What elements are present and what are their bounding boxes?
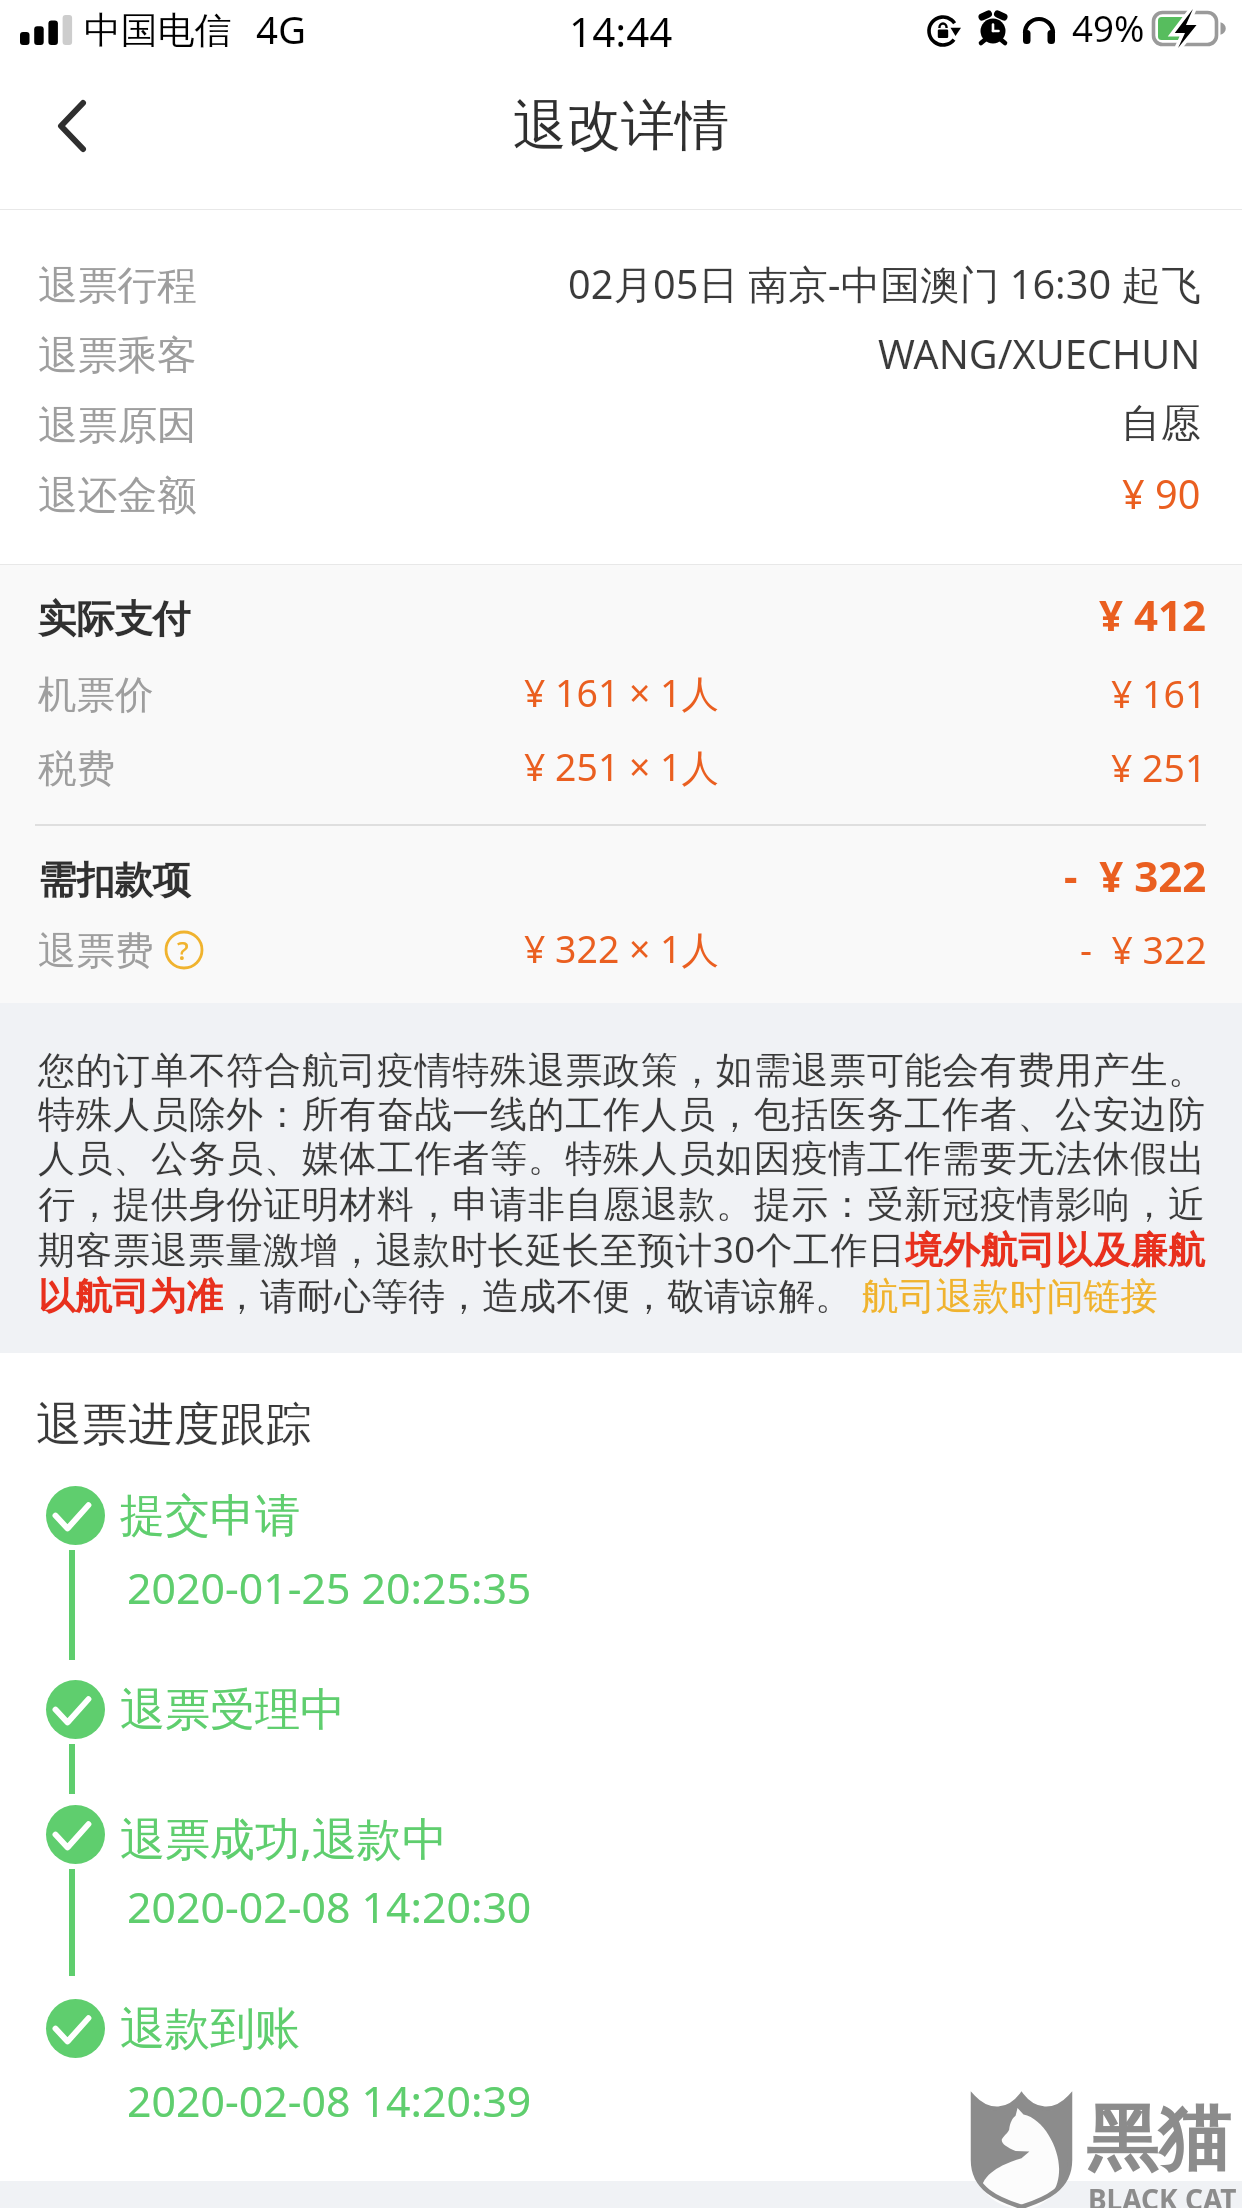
staticText: 中国电信 (84, 8, 232, 54)
staticText: - ¥ 322 (1064, 847, 1207, 899)
staticText: ¥ 90 (1122, 467, 1201, 521)
button[interactable]: 机票价 (0, 665, 1242, 717)
button[interactable]: 退还金额 (0, 461, 1242, 531)
staticText: 02月05日 南京-中国澳门 16:30 起飞 (568, 257, 1201, 311)
staticText: 退票成功,退款中 (120, 1807, 448, 1868)
button[interactable]: 退票费 (0, 921, 1242, 973)
staticText: ? (177, 932, 189, 967)
button[interactable]: Help (166, 931, 204, 969)
staticText: ¥ 161 × 1人 (524, 667, 719, 718)
button[interactable]: 退票原因 (0, 391, 1242, 461)
staticText: ¥ 412 (1099, 586, 1207, 638)
button[interactable]: 提交申请 (46, 1486, 105, 1545)
staticText: BLACK CAT (1088, 2180, 1237, 2208)
staticText: 退还金额 (38, 471, 197, 521)
staticText: 需扣款项 (38, 856, 191, 904)
staticText: 退票费 (38, 927, 154, 976)
staticText: 税费 (38, 745, 115, 794)
staticText: 49% (1072, 3, 1145, 53)
button[interactable]: 退票受理中 (46, 1680, 105, 1739)
button[interactable]: 税费 (0, 739, 1242, 791)
staticText: 机票价 (38, 671, 154, 720)
staticText: 自愿 (1121, 399, 1201, 449)
staticText: 退改详情 (513, 92, 729, 160)
button[interactable]: Back (30, 84, 114, 168)
staticText: 提交申请 (120, 1488, 300, 1545)
staticText: 退票行程 (38, 261, 197, 311)
staticText: 14:44 (569, 4, 673, 59)
staticText: 退票乘客 (38, 331, 197, 381)
staticText: 退票受理中 (120, 1682, 345, 1739)
staticText: - ¥ 322 (1080, 924, 1207, 975)
staticText: 退票进度跟踪 (36, 1396, 312, 1454)
staticText: WANG/XUECHUN (878, 327, 1201, 381)
button[interactable]: 需扣款项 (0, 848, 1242, 900)
staticText: ¥ 251 (1111, 742, 1207, 793)
staticText: 2020-02-08 14:20:39 (127, 2071, 532, 2129)
staticText: 退款到账 (120, 2001, 300, 2058)
button[interactable]: 退票行程 (0, 251, 1242, 321)
staticText: 实际支付 (38, 595, 191, 643)
staticText: 4G (256, 3, 307, 55)
button[interactable]: 退票乘客 (0, 321, 1242, 391)
staticText: ¥ 322 × 1人 (524, 923, 719, 974)
button[interactable]: 实际支付 (0, 587, 1242, 639)
staticText: 您的订单不符合航司疫情特殊退票政策，如需退票可能会有费用产生。特殊人员除外：所有… (38, 1047, 1205, 1320)
button[interactable]: 退票成功,退款中 (46, 1805, 105, 1864)
staticText: 黑猫 (1086, 2094, 1230, 2185)
staticText: ¥ 161 (1111, 668, 1207, 719)
staticText: ¥ 251 × 1人 (524, 741, 719, 792)
button[interactable]: 退款到账 (46, 1999, 105, 2058)
staticText: 退票原因 (38, 401, 197, 451)
staticText: 2020-01-25 20:25:35 (127, 1558, 532, 1616)
staticText: 2020-02-08 14:20:30 (127, 1877, 532, 1935)
